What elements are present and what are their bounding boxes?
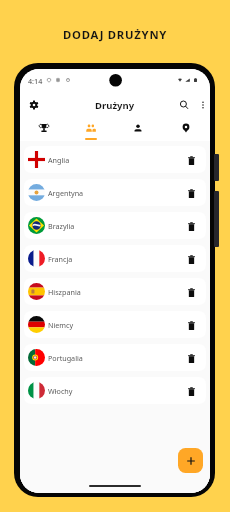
button[interactable]: Usuń Niemcy [182,316,200,334]
button[interactable]: Miejsca [162,120,210,136]
button[interactable]: Szukaj [175,96,193,114]
staticText: 4:14 [28,76,43,86]
button[interactable]: Usuń Hiszpania [182,283,200,301]
button[interactable]: Profil [114,120,162,136]
button[interactable]: Usuń Brazylia [182,217,200,235]
button[interactable]: Francja [24,245,206,272]
staticText: Brazylia [48,221,75,231]
button[interactable]: Niemcy [24,311,206,338]
button[interactable]: Usuń Portugalia [182,349,200,367]
button[interactable]: Anglia [24,146,206,173]
staticText: Anglia [48,155,70,165]
staticText: Drużyny [95,99,135,112]
button[interactable]: Usuń Argentyna [182,184,200,202]
button[interactable]: Ustawienia [25,96,43,114]
button[interactable]: Drużyny [67,120,114,136]
button[interactable]: Brazylia [24,212,206,239]
button[interactable]: Hiszpania [24,278,206,305]
staticText: Portugalia [48,353,83,363]
button[interactable]: Usuń Włochy [182,382,200,400]
button[interactable]: Usuń Anglia [182,151,200,169]
staticText: Argentyna [48,188,84,198]
staticText: Hiszpania [48,287,81,297]
button[interactable]: Usuń Francja [182,250,200,268]
staticText: Niemcy [48,320,74,330]
staticText: Francja [48,254,73,264]
button[interactable]: Dodaj drużynę [178,448,203,473]
button[interactable]: Włochy [24,377,206,404]
button[interactable]: Portugalia [24,344,206,371]
staticText: DODAJ DRUŻYNY [63,27,168,42]
button[interactable]: Argentyna [24,179,206,206]
button[interactable]: Więcej opcji [194,96,210,114]
staticText: Włochy [48,386,73,396]
button[interactable]: Turnieje [20,120,67,136]
